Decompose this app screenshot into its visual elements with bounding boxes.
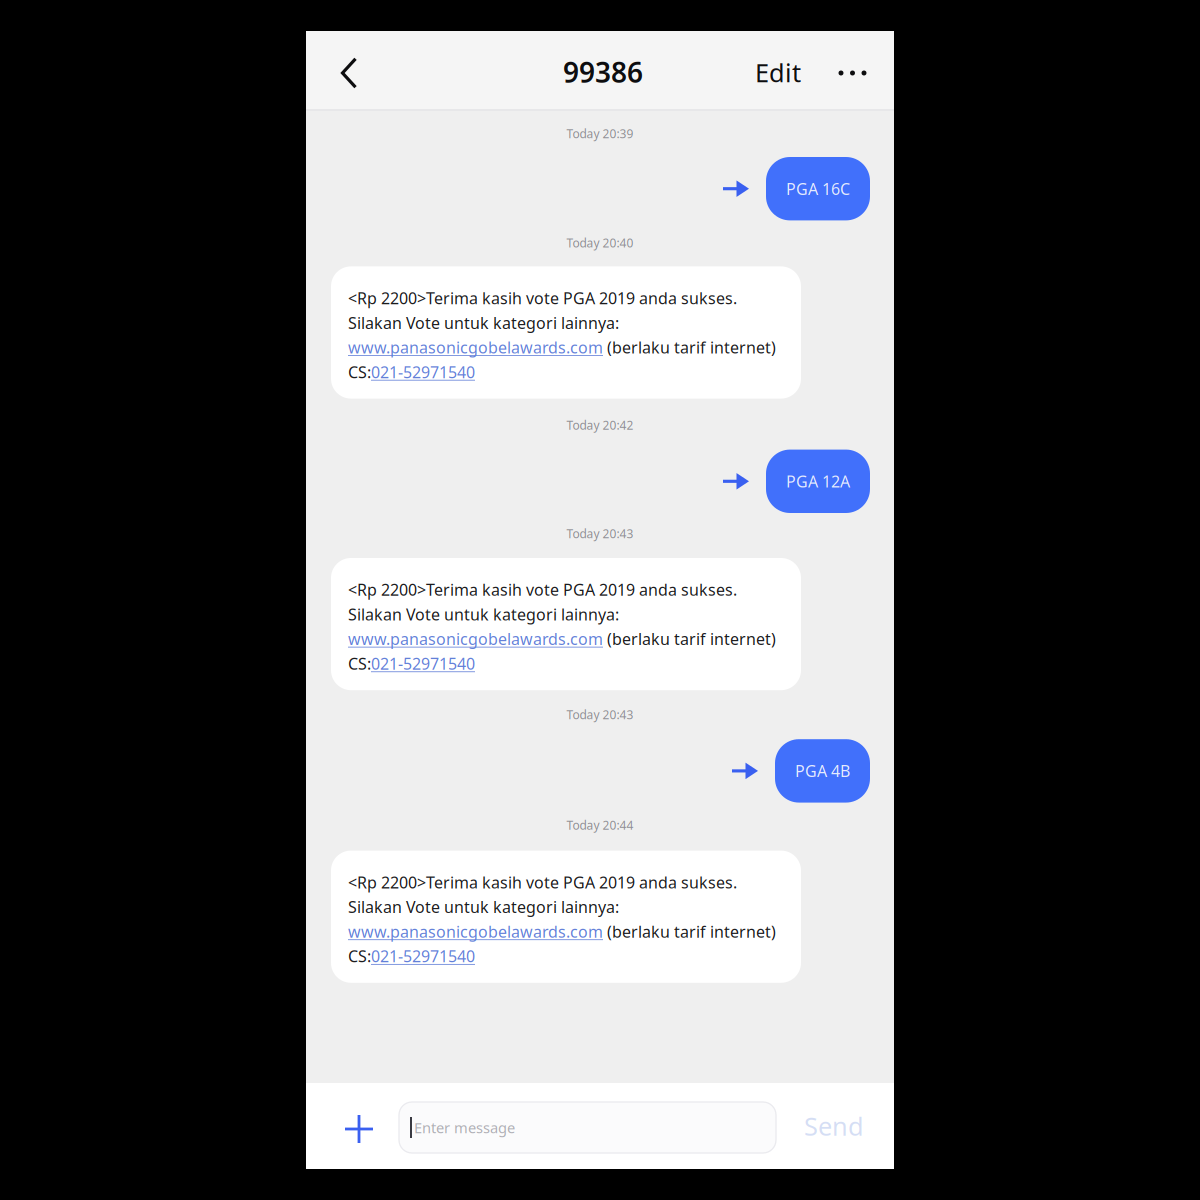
button[interactable]: Back bbox=[306, 31, 390, 109]
staticText: Today 20:44 bbox=[566, 817, 633, 833]
button[interactable]: Add attachment bbox=[337, 1083, 381, 1169]
button[interactable]: Edit bbox=[745, 31, 811, 109]
staticText: PGA 12A bbox=[786, 471, 850, 492]
staticText: (berlaku tarif internet) bbox=[603, 337, 776, 358]
staticText: Today 20:43 bbox=[566, 707, 633, 723]
button[interactable]: Enter message bbox=[399, 1099, 776, 1153]
staticText: CS: bbox=[348, 653, 371, 674]
staticText: Silakan Vote untuk kategori lainnya: bbox=[348, 604, 619, 625]
button[interactable]: PGA 4B bbox=[775, 739, 870, 803]
staticText: CS: bbox=[348, 361, 371, 382]
staticText: <Rp 2200>Terima kasih vote PGA 2019 anda… bbox=[348, 579, 737, 600]
staticText: PGA 4B bbox=[795, 760, 850, 781]
button[interactable]: <Rp 2200>Terima kasih vote PGA 2019 anda… bbox=[331, 851, 801, 983]
staticText: <Rp 2200>Terima kasih vote PGA 2019 anda… bbox=[348, 872, 737, 893]
button[interactable]: <Rp 2200>Terima kasih vote PGA 2019 anda… bbox=[331, 266, 801, 399]
staticText: 021-52971540 bbox=[371, 945, 475, 967]
staticText: www.panasonicgobelawards.com bbox=[348, 628, 603, 649]
button[interactable]: More options bbox=[834, 31, 871, 109]
staticText: Today 20:42 bbox=[566, 417, 633, 433]
staticText: Today 20:39 bbox=[566, 125, 633, 141]
button[interactable]: Send bbox=[804, 1083, 864, 1169]
staticText: <Rp 2200>Terima kasih vote PGA 2019 anda… bbox=[348, 287, 737, 309]
staticText: (berlaku tarif internet) bbox=[603, 921, 776, 942]
staticText: 021-52971540 bbox=[371, 653, 475, 674]
button[interactable]: PGA 16C bbox=[766, 157, 870, 220]
staticText: Today 20:43 bbox=[566, 525, 633, 541]
staticText: Send bbox=[804, 1109, 864, 1143]
button[interactable]: <Rp 2200>Terima kasih vote PGA 2019 anda… bbox=[331, 558, 801, 690]
staticText: 021-52971540 bbox=[371, 361, 475, 382]
staticText: PGA 16C bbox=[786, 178, 850, 199]
staticText: 99386 bbox=[563, 53, 643, 91]
staticText: www.panasonicgobelawards.com bbox=[348, 337, 603, 358]
staticText: www.panasonicgobelawards.com bbox=[348, 921, 603, 942]
staticText: Silakan Vote untuk kategori lainnya: bbox=[348, 896, 619, 917]
staticText: CS: bbox=[348, 945, 371, 967]
staticText: Silakan Vote untuk kategori lainnya: bbox=[348, 312, 619, 333]
staticText: Today 20:40 bbox=[566, 235, 633, 251]
button[interactable]: PGA 12A bbox=[766, 450, 870, 513]
staticText: Enter message bbox=[414, 1118, 515, 1137]
staticText: (berlaku tarif internet) bbox=[603, 628, 776, 649]
staticText: Edit bbox=[755, 56, 801, 89]
